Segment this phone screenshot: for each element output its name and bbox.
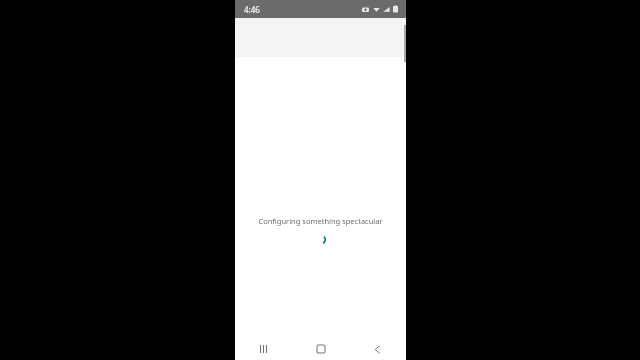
staticText: 4:46 xyxy=(244,4,260,15)
button[interactable]: Recent apps xyxy=(235,338,292,360)
button[interactable]: Back xyxy=(349,338,406,360)
staticText: Configuring something spectacular xyxy=(258,216,383,226)
button[interactable]: Home xyxy=(292,338,349,360)
